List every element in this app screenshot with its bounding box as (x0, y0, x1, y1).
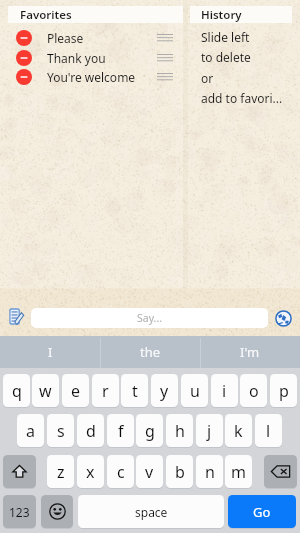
button[interactable]: r (92, 374, 119, 407)
staticText: b (175, 461, 185, 483)
staticText: space (135, 504, 168, 520)
button[interactable]: o (240, 374, 267, 407)
button[interactable]: Numbers (3, 495, 36, 528)
button[interactable]: z (47, 455, 74, 488)
button[interactable]: w (32, 374, 59, 407)
staticText: d (86, 420, 96, 442)
button[interactable]: x (77, 455, 104, 488)
staticText: add to favori... (201, 90, 283, 106)
staticText: x (86, 461, 95, 483)
button[interactable]: s (47, 414, 74, 447)
staticText: y (160, 380, 169, 402)
staticText: n (205, 461, 215, 483)
button[interactable]: d (77, 414, 104, 447)
button[interactable]: c (107, 455, 134, 488)
button[interactable]: t (121, 374, 148, 407)
button[interactable]: e (62, 374, 89, 407)
staticText: s (57, 420, 65, 442)
staticText: to delete (201, 49, 251, 65)
staticText: Slide left (201, 29, 250, 45)
staticText: q (12, 380, 22, 402)
button[interactable]: l (255, 414, 282, 447)
staticText: g (145, 420, 155, 442)
button[interactable]: Languages (275, 310, 292, 327)
button[interactable]: a (17, 414, 44, 447)
button[interactable]: or (190, 68, 300, 88)
button[interactable]: the (100, 336, 200, 368)
staticText: c (117, 461, 125, 483)
button[interactable]: f (107, 414, 134, 447)
staticText: a (26, 420, 35, 442)
button[interactable]: h (166, 414, 193, 447)
staticText: h (175, 420, 185, 442)
staticText: Favorites (20, 7, 72, 23)
button[interactable]: Go (228, 495, 296, 528)
button[interactable]: to delete (190, 47, 300, 67)
staticText: Please (47, 30, 157, 46)
button[interactable]: j (196, 414, 223, 447)
staticText: Thank you (47, 50, 157, 66)
staticText: l (266, 420, 271, 442)
staticText: m (231, 461, 246, 483)
button[interactable]: Shift (3, 455, 36, 488)
staticText: i (222, 380, 227, 402)
button[interactable]: g (136, 414, 163, 447)
button[interactable]: Please (0, 28, 186, 47)
button[interactable]: You're welcome (0, 67, 186, 86)
staticText: f (118, 420, 124, 442)
button[interactable]: p (270, 374, 297, 407)
staticText: j (207, 420, 212, 442)
staticText: Go (253, 503, 271, 521)
button[interactable]: Thank you (0, 48, 186, 67)
button[interactable]: b (166, 455, 193, 488)
staticText: z (57, 461, 65, 483)
button[interactable]: u (181, 374, 208, 407)
staticText: w (39, 380, 52, 402)
staticText: You're welcome (47, 69, 157, 85)
button[interactable]: Say... (31, 308, 268, 328)
staticText: I (48, 343, 53, 361)
staticText: r (102, 380, 109, 402)
staticText: or (201, 70, 214, 86)
staticText: History (201, 7, 242, 23)
button[interactable]: Emoji (41, 495, 73, 528)
staticText: u (190, 380, 200, 402)
button[interactable]: n (196, 455, 223, 488)
button[interactable]: I (0, 336, 100, 368)
staticText: I'm (240, 343, 260, 361)
button[interactable]: Slide left (190, 27, 300, 47)
staticText: v (145, 461, 154, 483)
button[interactable]: m (225, 455, 252, 488)
staticText: p (279, 380, 289, 402)
button[interactable]: k (225, 414, 252, 447)
staticText: o (249, 380, 259, 402)
button[interactable]: New note (5, 305, 27, 327)
button[interactable]: v (136, 455, 163, 488)
button[interactable]: I'm (200, 336, 300, 368)
staticText: k (234, 420, 243, 442)
button[interactable]: space (78, 495, 224, 528)
staticText: t (132, 380, 138, 402)
button[interactable]: add to favori... (190, 88, 300, 108)
staticText: the (140, 343, 161, 361)
button[interactable]: y (151, 374, 178, 407)
staticText: 123 (9, 504, 30, 520)
staticText: e (71, 380, 81, 402)
button[interactable]: i (211, 374, 238, 407)
staticText: Say... (137, 311, 163, 325)
button[interactable]: q (3, 374, 30, 407)
button[interactable]: Backspace (264, 455, 297, 488)
